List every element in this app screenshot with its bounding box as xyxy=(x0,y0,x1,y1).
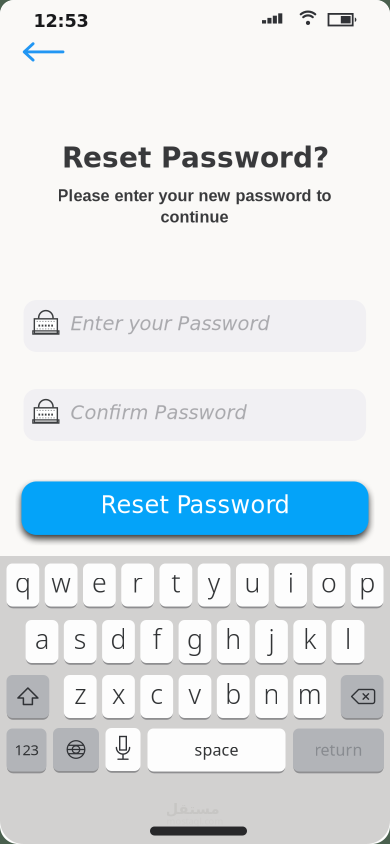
staticText: p xyxy=(359,564,375,600)
button[interactable]: space xyxy=(147,727,285,772)
staticText: r xyxy=(132,564,143,600)
staticText: h xyxy=(225,621,241,656)
button[interactable]: t xyxy=(159,562,192,607)
button[interactable]: c xyxy=(140,674,173,719)
staticText: Enter your Password xyxy=(71,312,270,335)
staticText: a xyxy=(35,621,49,656)
staticText: y xyxy=(208,564,221,600)
staticText: k xyxy=(303,621,316,656)
button[interactable]: b xyxy=(217,674,250,719)
staticText: m xyxy=(298,676,322,711)
button[interactable]: d xyxy=(102,619,135,664)
button[interactable]: s xyxy=(64,619,97,664)
staticText: continue xyxy=(160,208,228,226)
staticText: space xyxy=(194,739,238,760)
button[interactable]: z xyxy=(64,674,97,719)
staticText: u xyxy=(244,564,260,600)
button[interactable]: x xyxy=(102,674,135,719)
staticText: b xyxy=(225,676,241,711)
button[interactable]: o xyxy=(312,562,345,607)
staticText: g xyxy=(187,621,203,656)
button[interactable]: f xyxy=(140,619,173,664)
staticText: Reset Password xyxy=(100,491,289,519)
staticText: z xyxy=(74,676,86,711)
staticText: w xyxy=(51,564,71,600)
button[interactable]: l xyxy=(332,619,364,664)
button[interactable]: Reset Password xyxy=(21,481,368,535)
staticText: Please enter your new password to xyxy=(57,186,331,205)
staticText: c xyxy=(150,676,163,711)
staticText: j xyxy=(268,621,274,656)
button[interactable]: Confirm Password xyxy=(24,389,366,441)
staticText: مستقل xyxy=(165,801,219,817)
staticText: i xyxy=(288,564,294,600)
button[interactable]: v xyxy=(179,674,211,719)
button[interactable]: i xyxy=(274,562,307,607)
button[interactable]: Shift xyxy=(6,674,49,719)
staticText: Reset Password? xyxy=(62,142,329,174)
button[interactable]: a xyxy=(26,619,58,664)
button[interactable]: p xyxy=(351,562,384,607)
staticText: v xyxy=(188,676,201,711)
staticText: e xyxy=(92,564,107,600)
staticText: 123 xyxy=(14,740,38,759)
staticText: x xyxy=(112,676,125,711)
button[interactable]: r xyxy=(121,562,154,607)
button[interactable]: j xyxy=(255,619,288,664)
staticText: Confirm Password xyxy=(71,401,247,424)
staticText: t xyxy=(171,564,180,600)
button[interactable]: q xyxy=(6,562,39,607)
staticText: mostaql.com xyxy=(166,815,223,827)
button[interactable]: Dictate xyxy=(105,727,140,772)
button[interactable]: y xyxy=(198,562,231,607)
button[interactable]: w xyxy=(45,562,78,607)
staticText: f xyxy=(153,621,161,656)
button[interactable]: 123 xyxy=(6,727,46,772)
button[interactable]: u xyxy=(236,562,269,607)
staticText: q xyxy=(15,564,31,600)
button[interactable]: k xyxy=(293,619,326,664)
button[interactable]: Next keyboard xyxy=(53,727,99,772)
button[interactable]: Enter your Password xyxy=(24,300,366,352)
staticText: return xyxy=(314,739,362,760)
button[interactable]: e xyxy=(83,562,116,607)
button[interactable]: h xyxy=(217,619,250,664)
button[interactable]: Delete xyxy=(341,674,383,719)
button[interactable]: return xyxy=(293,727,384,772)
staticText: o xyxy=(321,564,337,600)
button[interactable]: n xyxy=(255,674,288,719)
staticText: l xyxy=(345,621,351,656)
button[interactable]: m xyxy=(293,674,326,719)
staticText: n xyxy=(263,676,279,711)
staticText: 12:53 xyxy=(33,11,88,31)
staticText: s xyxy=(74,621,87,656)
staticText: d xyxy=(110,621,126,656)
button[interactable]: g xyxy=(179,619,211,664)
button[interactable]: Back xyxy=(23,42,63,61)
